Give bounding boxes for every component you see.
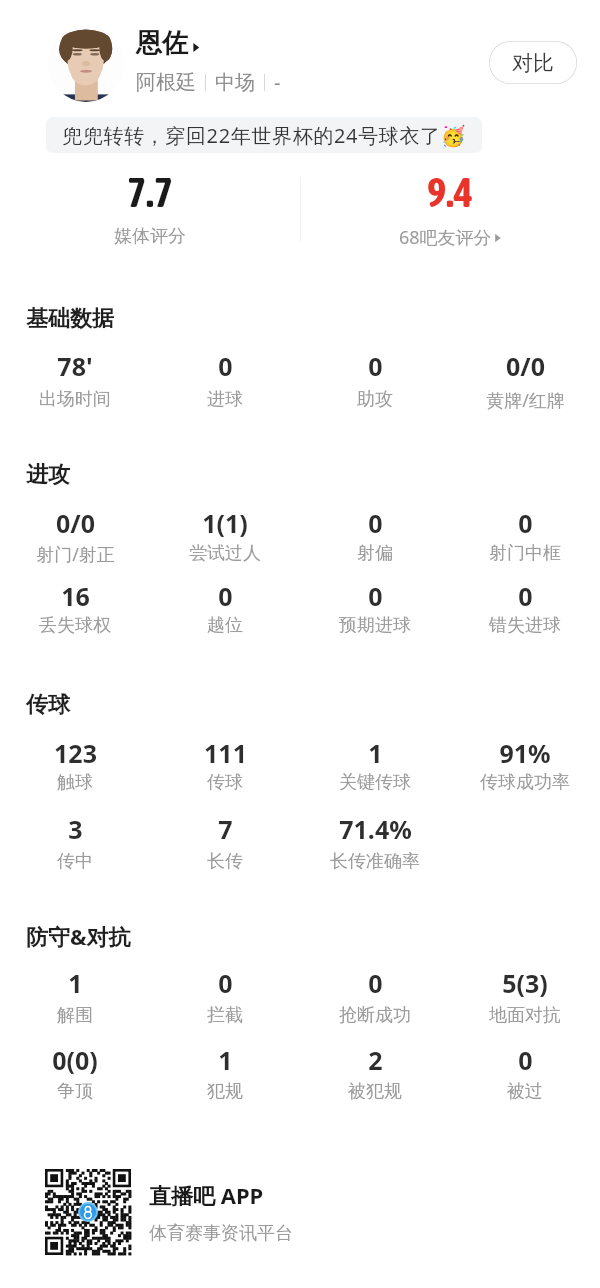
staticText: 丢失球权	[39, 614, 111, 637]
staticText: 基础数据	[26, 305, 114, 333]
staticText: 1	[68, 966, 83, 1000]
staticText: 射门/射正	[36, 542, 115, 567]
button[interactable]: Player photo	[48, 26, 124, 102]
staticText: 进攻	[26, 461, 70, 489]
staticText: 被犯规	[348, 1080, 402, 1103]
staticText: 传中	[57, 850, 93, 873]
staticText: 射偏	[357, 542, 393, 565]
staticText: 争顶	[57, 1080, 93, 1103]
staticText: 进球	[207, 388, 243, 411]
staticText: 9.4	[427, 169, 473, 216]
staticText: 对比	[512, 50, 554, 76]
button[interactable]: 对比	[489, 41, 577, 84]
staticText: 预期进球	[339, 614, 411, 637]
staticText: 关键传球	[339, 771, 411, 794]
staticText: 黄牌/红牌	[486, 388, 565, 413]
button[interactable]: 直播吧 APP	[45, 1164, 300, 1260]
staticText: 解围	[57, 1004, 93, 1027]
staticText: 68吧友评分	[399, 225, 492, 250]
staticText: 71.4%	[339, 812, 412, 846]
staticText: 16	[61, 579, 90, 613]
staticText: 7	[218, 812, 233, 846]
staticText: 5(3)	[502, 966, 548, 1000]
staticText: 越位	[207, 614, 243, 637]
staticText: 拦截	[207, 1004, 243, 1027]
staticText: 91%	[499, 736, 551, 770]
staticText: 0	[368, 506, 383, 540]
staticText: 3	[68, 812, 83, 846]
staticText: 长传	[207, 850, 243, 873]
staticText: 触球	[57, 771, 93, 794]
staticText: 恩佐	[136, 27, 188, 60]
staticText: 助攻	[357, 388, 393, 411]
staticText: 传球	[26, 691, 70, 719]
staticText: 传球成功率	[480, 771, 570, 794]
staticText: 体育赛事资讯平台	[149, 1222, 293, 1245]
staticText: 7.7	[127, 169, 173, 216]
staticText: 1	[368, 736, 383, 770]
staticText: 防守&对抗	[26, 921, 131, 951]
staticText: 0/0	[56, 506, 95, 540]
staticText: 123	[54, 736, 97, 770]
staticText: 1	[218, 1043, 233, 1077]
staticText: 传球	[207, 771, 243, 794]
staticText: 78'	[57, 349, 93, 383]
button[interactable]: 68吧友评分	[399, 225, 502, 250]
staticText: 0/0	[506, 349, 545, 383]
staticText: 0	[518, 1043, 533, 1077]
staticText: 0	[218, 579, 233, 613]
staticText: -	[274, 69, 281, 96]
staticText: 0	[518, 579, 533, 613]
staticText: 射门中框	[489, 542, 561, 565]
staticText: 111	[204, 736, 247, 770]
staticText: 0	[368, 349, 383, 383]
staticText: 犯规	[207, 1080, 243, 1103]
staticText: 0	[518, 506, 533, 540]
staticText: 0	[218, 349, 233, 383]
staticText: 0	[218, 966, 233, 1000]
staticText: 抢断成功	[339, 1004, 411, 1027]
staticText: 0	[368, 579, 383, 613]
staticText: 1(1)	[202, 506, 248, 540]
staticText: 兜兜转转，穿回22年世界杯的24号球衣了🥳	[62, 122, 467, 149]
staticText: 0	[368, 966, 383, 1000]
staticText: 尝试过人	[189, 542, 261, 565]
staticText: 被过	[507, 1080, 543, 1103]
staticText: 中场	[215, 70, 255, 95]
staticText: 媒体评分	[114, 225, 186, 248]
staticText: 地面对抗	[489, 1004, 561, 1027]
staticText: 阿根廷	[136, 70, 196, 95]
staticText: 长传准确率	[330, 850, 420, 873]
button[interactable]: 恩佐	[136, 27, 201, 60]
staticText: 0(0)	[52, 1043, 98, 1077]
staticText: 2	[368, 1043, 383, 1077]
staticText: 错失进球	[489, 614, 561, 637]
staticText: 直播吧 APP	[149, 1180, 264, 1210]
staticText: 出场时间	[39, 388, 111, 411]
